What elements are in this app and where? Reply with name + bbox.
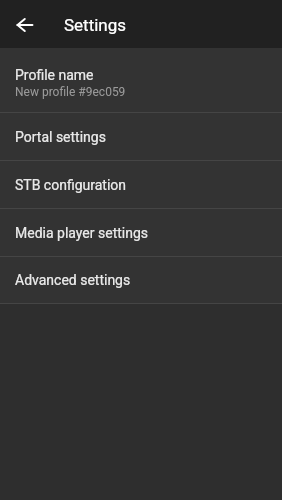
button[interactable]: STB configuration (0, 161, 282, 208)
staticText: Portal settings (15, 129, 106, 145)
button[interactable]: Portal settings (0, 113, 282, 160)
staticText: STB configuration (15, 177, 127, 193)
button[interactable]: Media player settings (0, 209, 282, 256)
staticText: Profile name (15, 67, 94, 83)
staticText: Media player settings (15, 225, 149, 241)
button[interactable]: Back (0, 0, 48, 48)
staticText: Settings (64, 15, 127, 35)
staticText: New profile #9ec059 (15, 85, 126, 99)
button[interactable]: Profile name (0, 48, 282, 112)
staticText: Advanced settings (15, 272, 131, 288)
button[interactable]: Advanced settings (0, 257, 282, 303)
